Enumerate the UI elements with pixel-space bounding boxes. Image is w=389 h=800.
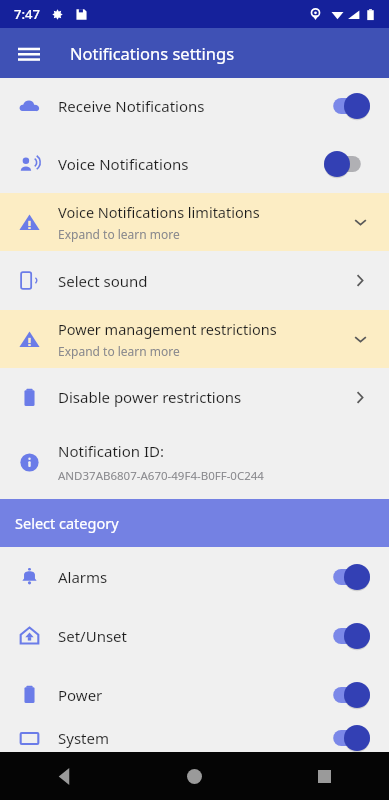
staticText: Notifications settings xyxy=(70,42,235,64)
staticText: Expand to learn more xyxy=(58,343,180,359)
staticText: Alarms xyxy=(58,567,324,587)
button[interactable]: Recent apps xyxy=(259,752,389,800)
button[interactable]: Disable power restrictions xyxy=(0,368,389,426)
staticText: System xyxy=(58,728,324,748)
button[interactable]: Notification ID: xyxy=(0,426,389,499)
staticText: Voice Notifications limitations xyxy=(58,202,260,222)
staticText: Select sound xyxy=(58,271,354,291)
staticText: Select category xyxy=(15,513,119,533)
button[interactable]: Select sound xyxy=(0,251,389,310)
staticText: Receive Notifications xyxy=(58,96,324,116)
button[interactable]: Alarms xyxy=(0,547,389,606)
button[interactable]: Home xyxy=(129,752,259,800)
button[interactable]: System xyxy=(0,724,389,752)
button[interactable]: Open navigation menu xyxy=(10,34,48,72)
staticText: AND37AB6807-A670-49F4-B0FF-0C244 xyxy=(58,468,264,484)
staticText: Notification ID: xyxy=(58,441,164,461)
button[interactable]: Power xyxy=(0,665,389,724)
button[interactable]: Voice Notifications limitations xyxy=(0,193,389,251)
button[interactable]: Receive Notifications xyxy=(0,78,389,134)
button[interactable]: Set/Unset xyxy=(0,606,389,665)
staticText: Set/Unset xyxy=(58,626,324,646)
staticText: Power xyxy=(58,685,324,705)
staticText: Power management restrictions xyxy=(58,319,277,339)
button[interactable]: Power management restrictions xyxy=(0,310,389,368)
button[interactable]: Voice Notifications xyxy=(0,134,389,193)
staticText: Disable power restrictions xyxy=(58,387,354,407)
staticText: Expand to learn more xyxy=(58,226,180,242)
button[interactable]: Back xyxy=(0,752,129,800)
staticText: Voice Notifications xyxy=(58,154,324,174)
staticText: 7:47 xyxy=(14,5,40,23)
